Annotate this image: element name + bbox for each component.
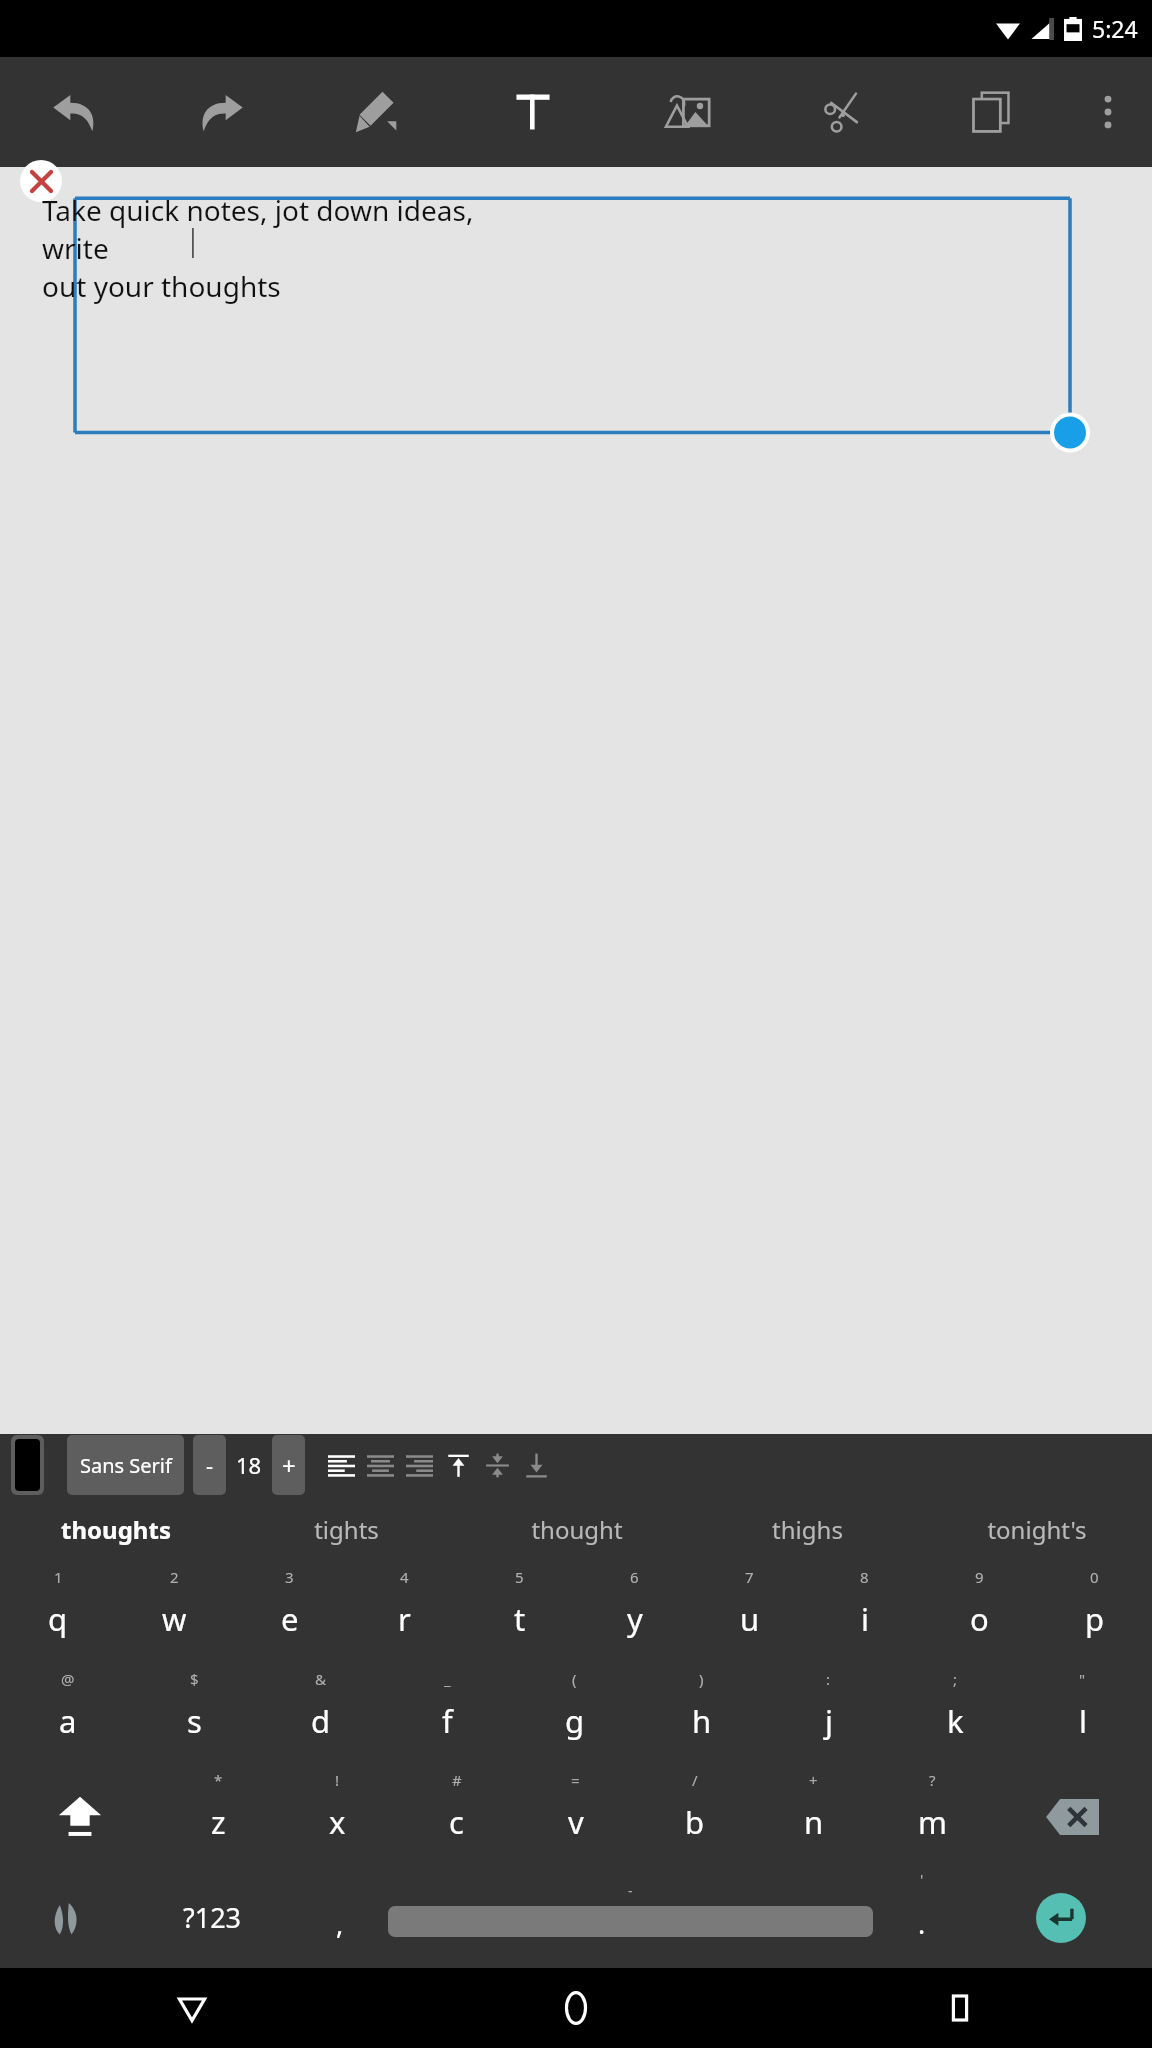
staticText: . [918,1905,926,1942]
staticText: o [970,1598,989,1640]
button[interactable]: / [635,1766,754,1867]
button[interactable]: Back [0,1968,384,2048]
button[interactable]: Switch language [0,1867,133,1968]
staticText: 6 [630,1567,639,1587]
button[interactable]: ) [638,1665,765,1766]
button[interactable]: Text colour [15,1439,40,1491]
button[interactable]: ; [892,1665,1019,1766]
button[interactable]: Space [388,1881,873,1954]
button[interactable]: * [159,1766,278,1867]
staticText: l [1079,1700,1087,1742]
staticText: ( [572,1669,577,1689]
staticText: 18 [236,1450,262,1480]
button[interactable]: Align top [439,1434,478,1496]
button[interactable]: tonight's [922,1496,1152,1563]
button[interactable]: Align middle [478,1434,517,1496]
button[interactable]: Delete text box [20,160,62,202]
button[interactable]: @ [5,1665,131,1766]
staticText: Sans Serif [80,1452,172,1479]
button[interactable]: 8 [807,1563,922,1665]
staticText: g [565,1700,585,1742]
button[interactable]: Increase size [272,1435,305,1495]
button[interactable]: ! [278,1766,397,1867]
button[interactable]: $ [131,1665,257,1766]
button[interactable]: 9 [922,1563,1037,1665]
staticText: + [282,1449,296,1482]
button[interactable]: ?123 [133,1867,291,1968]
staticText: 9 [975,1567,984,1587]
button[interactable]: Pages [917,57,1064,167]
staticText: & [315,1669,326,1689]
staticText: ) [699,1669,704,1689]
button[interactable]: = [516,1766,635,1867]
button[interactable]: Insert image [606,57,770,167]
button[interactable]: More options [1064,57,1152,167]
button[interactable]: _ [384,1665,511,1766]
button[interactable]: # [397,1766,516,1867]
button[interactable]: 0 [1037,1563,1152,1665]
staticText: j [825,1700,833,1742]
staticText: n [804,1801,824,1843]
staticText: / [692,1770,698,1790]
staticText: 2 [170,1567,179,1587]
button[interactable]: Enter [970,1867,1152,1968]
staticText: thoughts [61,1513,171,1546]
button[interactable]: thoughts [0,1496,231,1563]
staticText: m [918,1801,947,1843]
button[interactable]: 3 [232,1563,347,1665]
button[interactable]: " [1019,1665,1146,1766]
button[interactable]: Undo [0,57,148,167]
button[interactable]: Recents [768,1968,1152,2048]
button[interactable]: Home [384,1968,768,2048]
button[interactable]: Align centre [361,1434,400,1496]
staticText: Take quick notes, jot down ideas, write … [42,191,542,305]
staticText: $ [190,1669,199,1689]
staticText: # [452,1770,462,1790]
staticText: tonight's [987,1513,1087,1546]
staticText: s [187,1700,202,1742]
button[interactable]: Cut [770,57,917,167]
button[interactable]: Sans Serif [67,1435,184,1495]
staticText: b [685,1801,705,1843]
button[interactable]: ? [873,1766,992,1867]
button[interactable]: 1 [0,1563,116,1665]
button[interactable]: Align bottom [517,1434,556,1496]
staticText: q [48,1598,68,1640]
staticText: r [398,1598,411,1640]
staticText: " [1079,1669,1086,1689]
button[interactable]: ( [511,1665,638,1766]
staticText: x [329,1801,346,1843]
button[interactable]: + [754,1766,873,1867]
button[interactable]: 4 [347,1563,462,1665]
button[interactable]: thighs [692,1496,922,1563]
button[interactable]: Align left [322,1434,361,1496]
button[interactable]: thought [462,1496,692,1563]
button[interactable]: Align right [400,1434,439,1496]
staticText: 0 [1090,1567,1099,1587]
staticText: ! [335,1770,340,1790]
button[interactable]: & [257,1665,384,1766]
button[interactable]: Draw [295,57,459,167]
button[interactable]: 6 [577,1563,692,1665]
button[interactable]: 2 [116,1563,232,1665]
staticText: tights [314,1513,379,1546]
button[interactable]: Shift [0,1766,159,1867]
button[interactable]: : [765,1665,892,1766]
button[interactable]: , [291,1867,388,1968]
button[interactable]: Decrease size [193,1435,226,1495]
button[interactable]: Take quick notes, jot down ideas, write … [42,191,542,305]
staticText: thought [531,1513,623,1546]
staticText: - [628,1881,633,1900]
staticText: * [214,1770,223,1790]
staticText: 4 [400,1567,409,1587]
staticText: + [809,1770,818,1790]
button[interactable]: 5 [462,1563,577,1665]
staticText: w [162,1598,187,1640]
staticText: 5:24 [1092,13,1138,44]
button[interactable]: . [873,1867,970,1968]
button[interactable]: tights [231,1496,462,1563]
button[interactable]: 7 [692,1563,807,1665]
button[interactable]: Backspace [992,1766,1152,1867]
button[interactable]: Redo [148,57,295,167]
button[interactable]: Text [459,57,606,167]
